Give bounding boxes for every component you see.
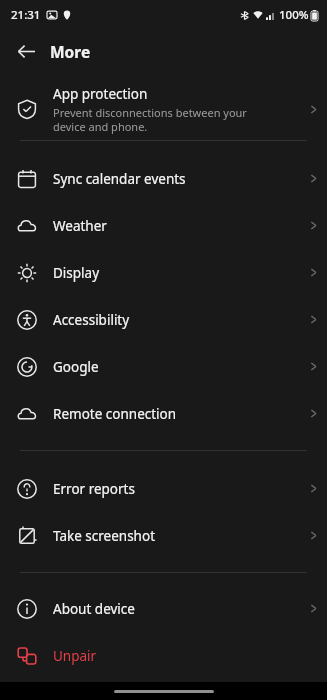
- staticText: Unpair: [53, 647, 97, 665]
- staticText: Google: [53, 358, 99, 376]
- staticText: About device: [53, 600, 135, 618]
- staticText: 100%: [279, 7, 309, 23]
- staticText: Display: [53, 264, 100, 282]
- button[interactable]: Remote connection: [0, 390, 327, 437]
- button[interactable]: Unpair: [0, 632, 327, 679]
- button[interactable]: Sync calendar events: [0, 155, 327, 202]
- staticText: App protection: [53, 85, 148, 103]
- button[interactable]: Accessibility: [0, 296, 327, 343]
- button[interactable]: About device: [0, 585, 327, 632]
- button[interactable]: Take screenshot: [0, 512, 327, 559]
- staticText: Accessibility: [53, 311, 130, 329]
- button[interactable]: App protection: [0, 78, 327, 140]
- staticText: 21:31: [11, 7, 41, 23]
- staticText: Error reports: [53, 480, 135, 498]
- button[interactable]: Display: [0, 249, 327, 296]
- button[interactable]: Weather: [0, 202, 327, 249]
- staticText: Sync calendar events: [53, 170, 186, 188]
- staticText: Weather: [53, 217, 107, 235]
- staticText: Take screenshot: [53, 527, 156, 545]
- staticText: Remote connection: [53, 405, 177, 423]
- staticText: Prevent disconnections between your devi…: [53, 105, 247, 134]
- button[interactable]: Error reports: [0, 465, 327, 512]
- button[interactable]: Back: [8, 33, 44, 69]
- button[interactable]: Google: [0, 343, 327, 390]
- staticText: More: [50, 41, 91, 62]
